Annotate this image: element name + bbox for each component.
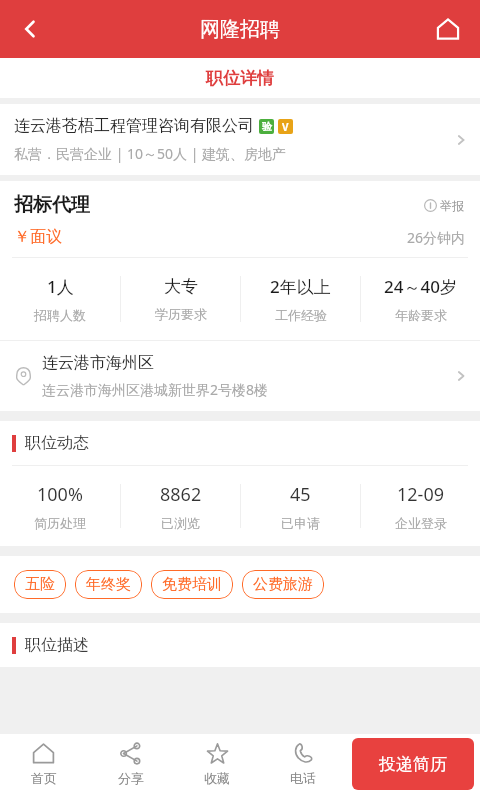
staticText: 已浏览 <box>161 515 200 531</box>
button[interactable]: 连云港苍梧工程管理咨询有限公司 <box>0 104 480 175</box>
staticText: 连云港苍梧工程管理咨询有限公司 <box>14 116 254 136</box>
staticText: 免费培训 <box>162 575 222 594</box>
staticText: 年龄要求 <box>395 307 447 323</box>
staticText: 1人 <box>47 275 74 298</box>
staticText: 五险 <box>25 575 55 594</box>
button[interactable]: 举报 <box>420 194 468 217</box>
staticText: 简历处理 <box>34 515 86 531</box>
staticText: 网隆招聘 <box>200 17 280 42</box>
staticText: 收藏 <box>204 770 230 786</box>
staticText: 大专 <box>164 276 198 297</box>
staticText: 学历要求 <box>155 306 207 322</box>
staticText: 100% <box>37 482 83 507</box>
button[interactable]: 免费培训 <box>151 570 233 599</box>
button[interactable]: 收藏 <box>174 734 260 794</box>
staticText: 私营．民营企业 | 10～50人 | 建筑、房地产 <box>14 144 287 163</box>
staticText: V <box>282 120 289 134</box>
staticText: 年终奖 <box>86 575 131 594</box>
staticText: 工作经验 <box>275 307 327 323</box>
staticText: 电话 <box>290 770 316 786</box>
staticText: 2年以上 <box>270 275 331 298</box>
button[interactable]: Home <box>424 5 472 53</box>
staticText: 26分钟内 <box>407 228 466 247</box>
button[interactable]: 连云港市海州区 <box>0 341 480 411</box>
staticText: 招聘人数 <box>34 307 86 323</box>
staticText: 连云港市海州区 <box>42 353 154 373</box>
staticText: 职位详情 <box>206 68 274 89</box>
staticText: 职位动态 <box>25 433 89 453</box>
staticText: 举报 <box>440 198 464 213</box>
staticText: 8862 <box>160 482 202 507</box>
staticText: 首页 <box>31 770 57 786</box>
button[interactable]: 首页 <box>0 734 87 794</box>
staticText: 招标代理 <box>14 193 420 217</box>
button[interactable]: 电话 <box>260 734 346 794</box>
staticText: 连云港市海州区港城新世界2号楼8楼 <box>42 380 269 399</box>
button[interactable]: 投递简历 <box>352 738 474 790</box>
button[interactable]: 年终奖 <box>75 570 142 599</box>
button[interactable]: 公费旅游 <box>242 570 324 599</box>
staticText: 投递简历 <box>379 754 447 775</box>
staticText: 12-09 <box>397 482 444 507</box>
staticText: 24～40岁 <box>384 275 457 298</box>
button[interactable]: 分享 <box>87 734 174 794</box>
staticText: 公费旅游 <box>253 575 313 594</box>
staticText: 企业登录 <box>395 515 447 531</box>
staticText: 验 <box>262 120 272 133</box>
staticText: ￥面议 <box>14 227 407 247</box>
staticText: 职位描述 <box>25 635 89 655</box>
staticText: 已申请 <box>281 515 320 531</box>
staticText: 分享 <box>118 770 144 786</box>
button[interactable]: Back <box>6 5 54 53</box>
button[interactable]: 五险 <box>14 570 66 599</box>
staticText: 45 <box>290 482 311 507</box>
